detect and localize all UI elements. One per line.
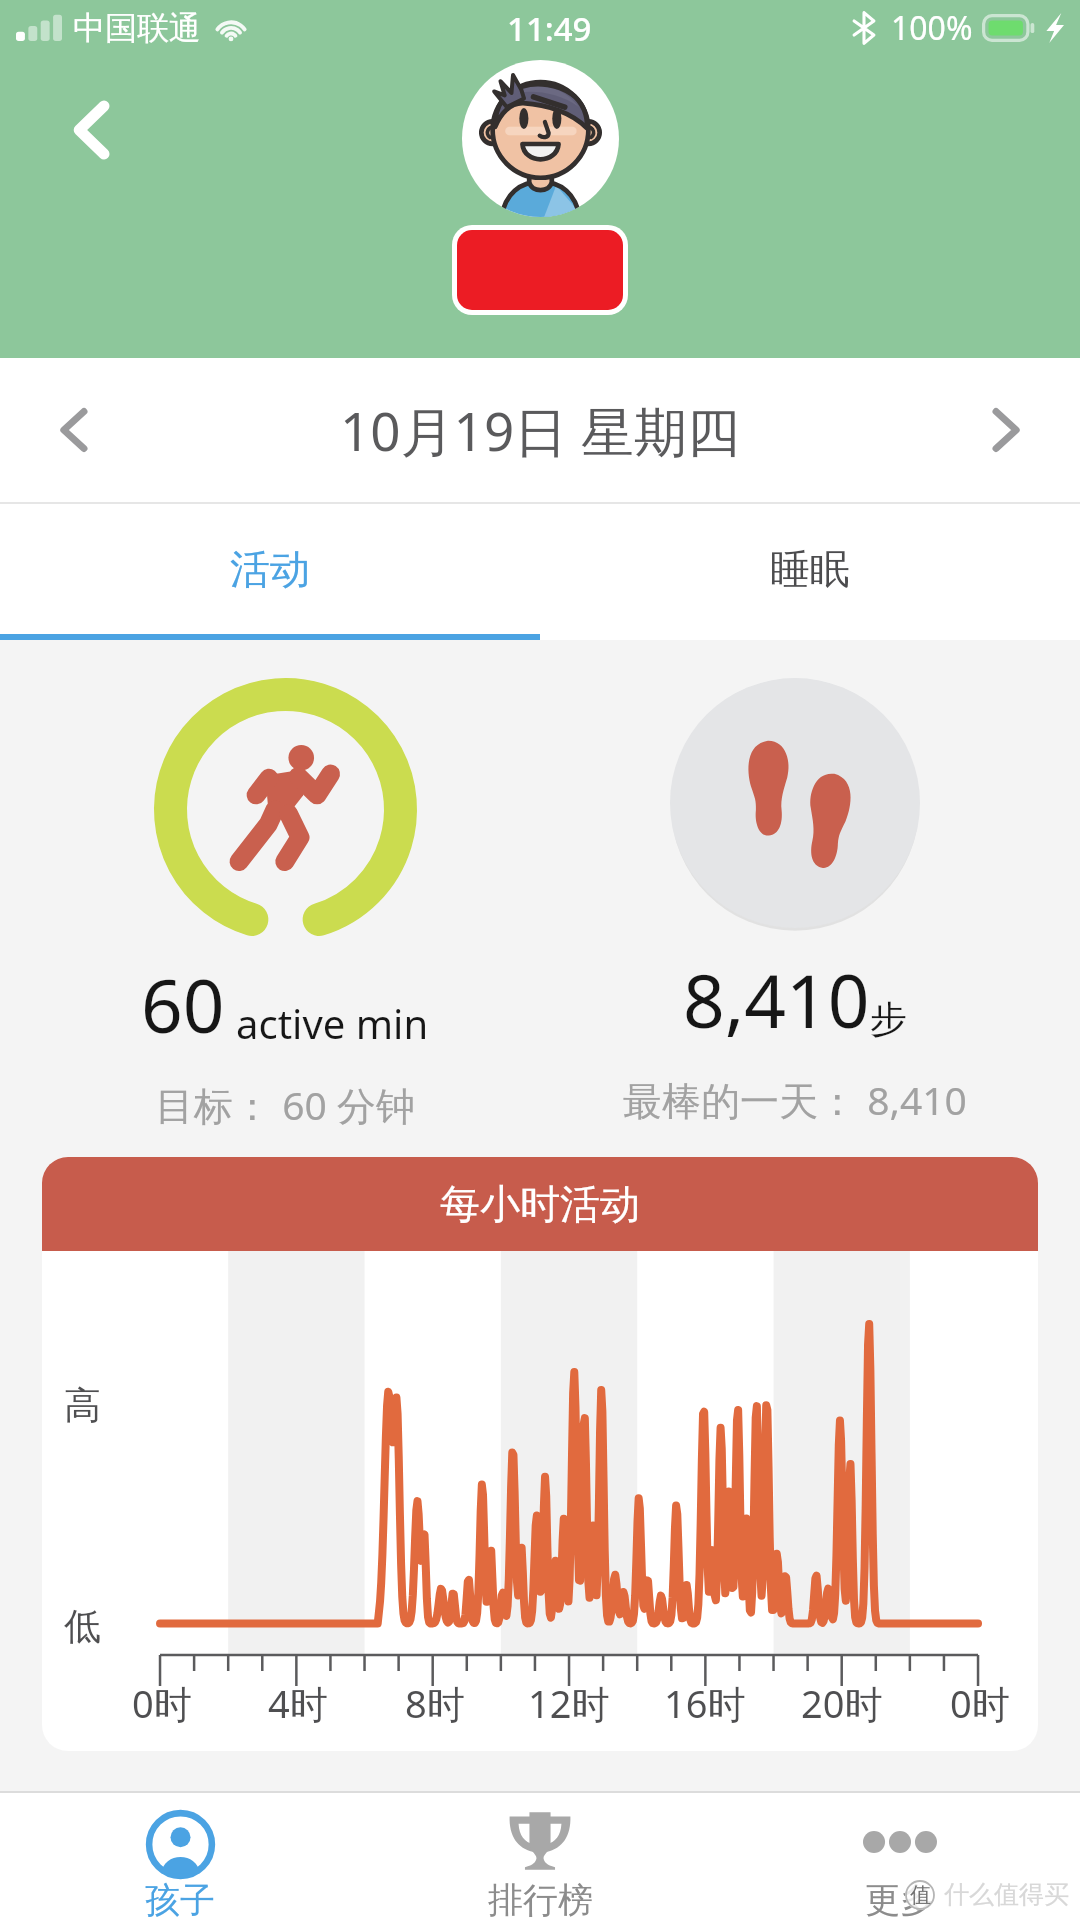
staticText: 每小时活动 [440, 1179, 640, 1229]
button[interactable]: 排行榜 [360, 1793, 720, 1920]
staticText: 11:49 [507, 6, 592, 51]
staticText: 排行榜 [488, 1878, 593, 1920]
staticText: 10月19日 星期四 [150, 394, 930, 466]
staticText: 8,410 [683, 950, 870, 1049]
staticText: 20时 [801, 1677, 883, 1729]
staticText: 什么值得买 [944, 1879, 1069, 1910]
staticText: 步 [870, 996, 907, 1043]
button[interactable]: Back [48, 90, 128, 170]
staticText: 目标： 60 分钟 [155, 1078, 415, 1131]
staticText: 中国联通 [73, 8, 201, 48]
button[interactable]: 每小时活动 [42, 1157, 1038, 1751]
staticText: 睡眠 [770, 544, 850, 594]
staticText: active min [236, 996, 429, 1050]
staticText: 100% [891, 6, 973, 50]
staticText: 低 [64, 1603, 101, 1650]
staticText: 高 [64, 1382, 101, 1429]
button[interactable]: 睡眠 [540, 504, 1080, 634]
button[interactable]: 更多 [720, 1793, 1080, 1920]
staticText: 值 [910, 1882, 931, 1908]
staticText: 12时 [528, 1677, 610, 1729]
staticText: 孩子 [145, 1878, 215, 1920]
staticText: 4时 [268, 1677, 328, 1729]
staticText: 8时 [405, 1677, 465, 1729]
staticText: 0时 [132, 1677, 192, 1729]
button[interactable]: 孩子 [0, 1793, 360, 1920]
staticText: 16时 [664, 1677, 746, 1729]
button[interactable]: Next day [930, 358, 1080, 502]
staticText: 60 [141, 955, 225, 1054]
button[interactable]: Profile avatar [462, 60, 619, 217]
staticText: 更多 [865, 1878, 935, 1920]
button[interactable]: Previous day [0, 358, 150, 502]
staticText: 活动 [230, 544, 310, 594]
staticText: 0时 [950, 1677, 1010, 1729]
staticText: 最棒的一天： 8,410 [623, 1073, 967, 1126]
button[interactable]: 活动 [0, 504, 540, 634]
button[interactable]: Child name badge [457, 230, 623, 310]
